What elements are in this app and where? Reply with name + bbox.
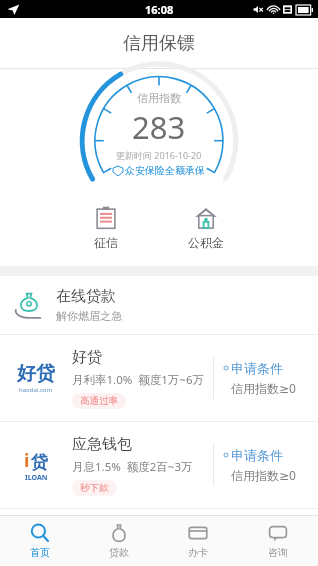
staticText: 好贷 (17, 362, 55, 386)
staticText: 众安保险全额承保 (125, 164, 205, 177)
button[interactable]: i (0, 422, 318, 508)
button[interactable]: 首页 (0, 516, 79, 566)
button[interactable]: 申请条件 (224, 447, 283, 463)
staticText: 好贷 (72, 348, 102, 367)
staticText: 解你燃眉之急 (56, 309, 122, 323)
staticText: haodai.com (19, 386, 53, 394)
staticText: 贷款 (109, 546, 129, 559)
staticText: 高通过率 (80, 395, 118, 407)
button[interactable]: 申请条件 (224, 360, 283, 376)
staticText: 信用指数≥0 (231, 380, 296, 396)
button[interactable]: 咨询 (238, 516, 318, 566)
button[interactable]: 在线贷款 (0, 276, 318, 334)
staticText: 月息1.5% 额度2百~3万 (72, 459, 193, 475)
staticText: 更新时间 2016-10-20 (116, 149, 202, 161)
button[interactable]: 好贷 (0, 335, 318, 421)
staticText: 申请条件 (231, 360, 283, 376)
staticText: 咨询 (268, 546, 288, 559)
staticText: ILOAN (25, 473, 48, 483)
staticText: 申请条件 (231, 447, 283, 463)
staticText: i (24, 448, 30, 473)
staticText: 征信 (94, 235, 118, 250)
staticText: 在线贷款 (56, 287, 116, 306)
button[interactable]: 征信 (78, 204, 134, 252)
staticText: 信用指数≥0 (231, 467, 296, 483)
staticText: 16:08 (145, 2, 174, 17)
staticText: 月利率1.0% 额度1万~6万 (72, 372, 205, 388)
button[interactable]: 公积金 (172, 204, 240, 252)
staticText: 信用保镖 (123, 32, 195, 55)
other: 征信 (94, 206, 118, 230)
staticText: 应急钱包 (72, 435, 132, 454)
staticText: 秒下款 (80, 482, 109, 494)
staticText: 首页 (30, 546, 50, 559)
staticText: 283 (132, 106, 186, 148)
staticText: 办卡 (188, 546, 208, 559)
staticText: 公积金 (188, 235, 224, 250)
button[interactable]: 贷款 (79, 516, 158, 566)
staticText: 贷 (31, 452, 48, 473)
button[interactable]: 办卡 (158, 516, 238, 566)
staticText: 信用指数 (137, 91, 181, 105)
other: 公积金 (194, 206, 218, 230)
